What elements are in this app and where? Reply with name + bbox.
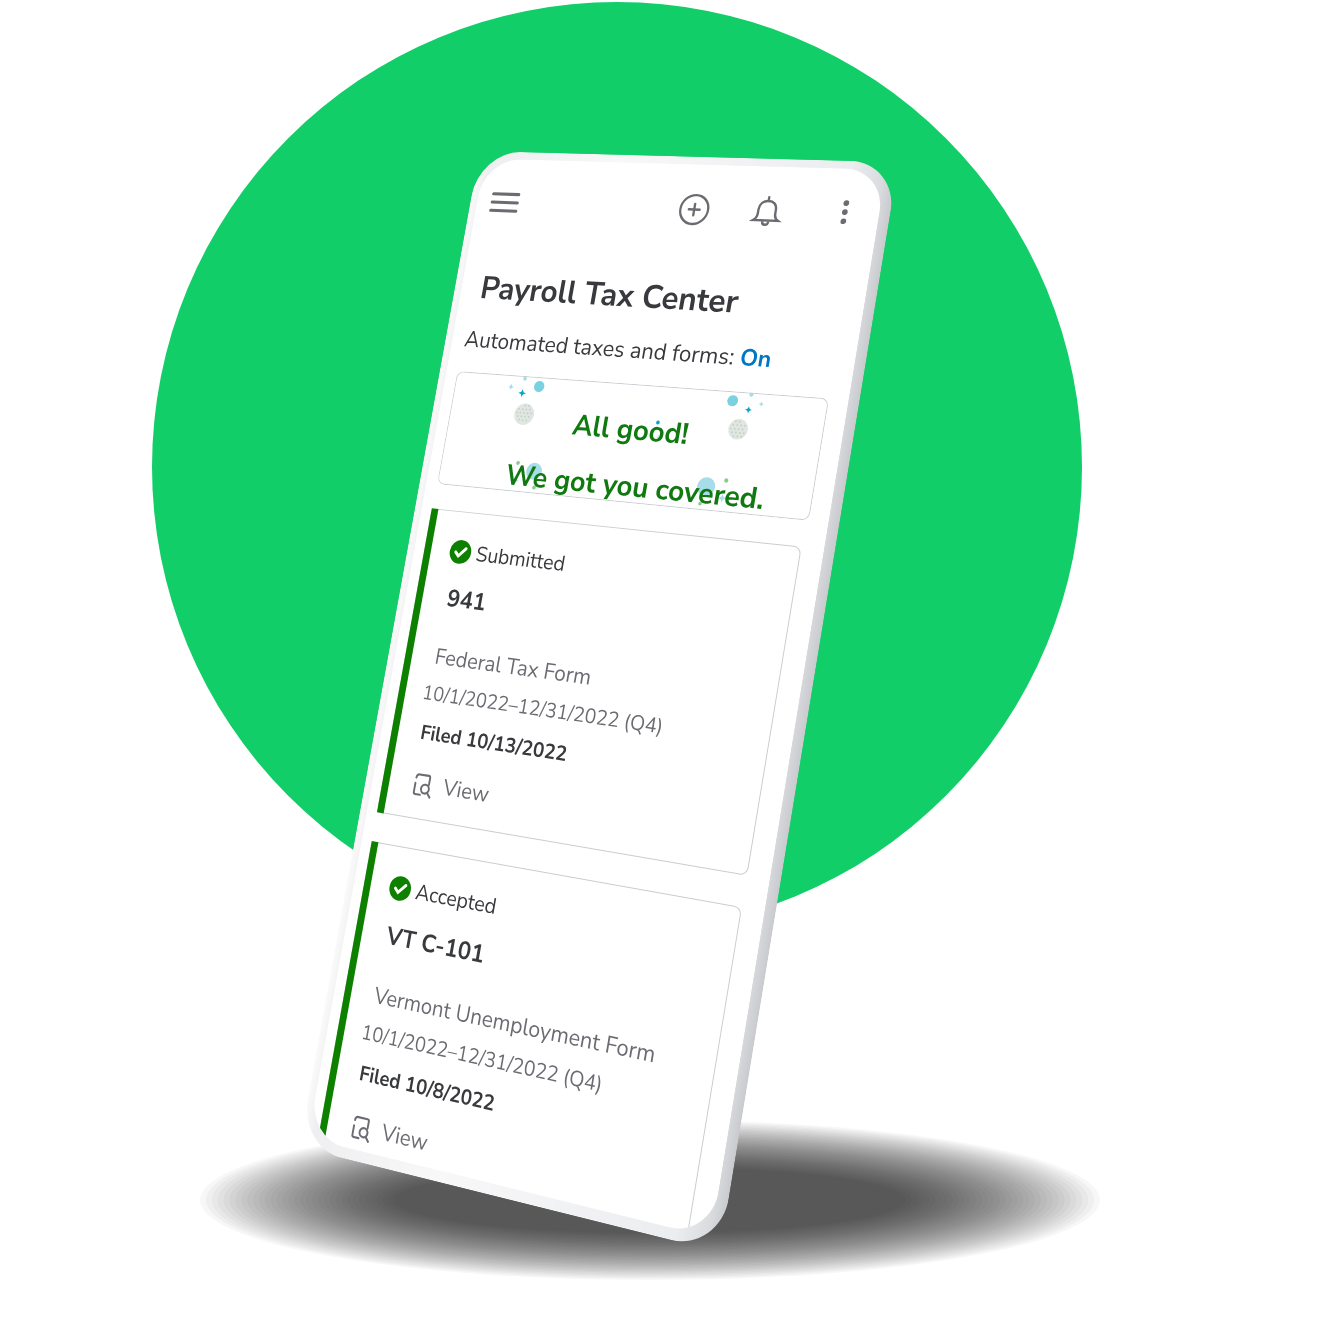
staticText: Filed 10/13/2022 [418, 718, 570, 769]
staticText: Submitted [474, 540, 568, 579]
staticText: View [441, 772, 492, 810]
staticText: Payroll Tax Center [477, 267, 742, 324]
button[interactable] [318, 841, 742, 1232]
staticText: Filed 10/8/2022 [357, 1059, 497, 1119]
button[interactable]: Add [671, 188, 717, 231]
button[interactable] [377, 508, 802, 876]
button[interactable]: Menu [484, 183, 525, 222]
button[interactable]: More options [823, 192, 866, 231]
staticText: Accepted [413, 877, 499, 922]
staticText: Vermont Unemployment Form [372, 980, 658, 1071]
button[interactable]: Notifications [743, 190, 790, 233]
staticText: VT C-101 [384, 919, 488, 972]
button[interactable]: All good! [437, 371, 829, 521]
staticText: 941 [444, 582, 489, 619]
staticText: Federal Tax Form [433, 642, 594, 693]
staticText: View [379, 1117, 431, 1159]
staticText: All good! [570, 406, 692, 455]
staticText: Automated taxes and forms: [462, 324, 743, 374]
staticText: We got you covered. [503, 456, 768, 516]
staticText: 10/1/2022–12/31/2022 (Q4) [420, 679, 666, 742]
staticText: On [737, 342, 774, 376]
staticText: 10/1/2022–12/31/2022 (Q4) [359, 1018, 605, 1100]
